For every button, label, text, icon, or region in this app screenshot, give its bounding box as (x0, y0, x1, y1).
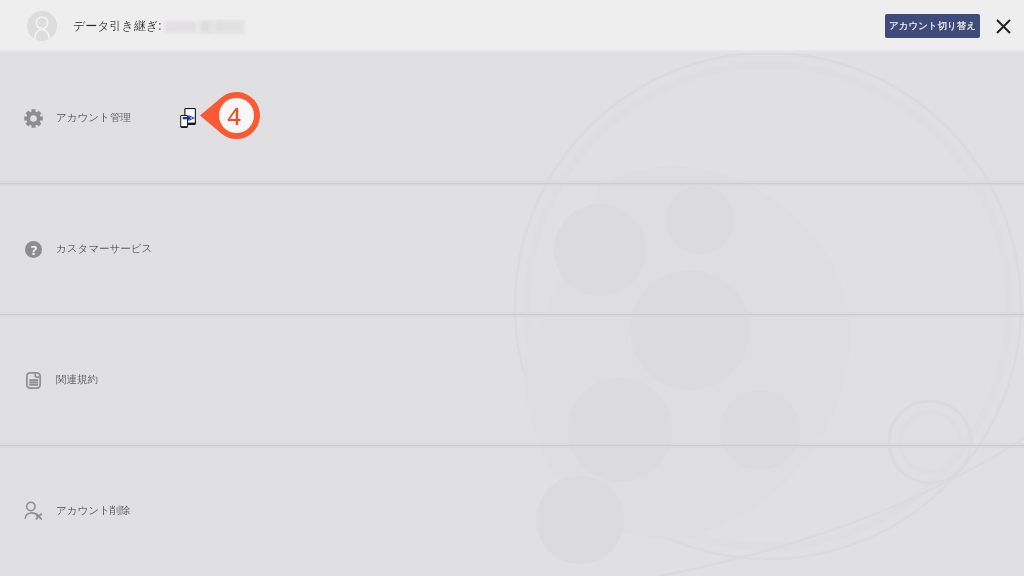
staticText: 4 (227, 99, 241, 132)
button[interactable]: アカウント削除 (0, 446, 1024, 576)
staticText: アカウント管理 (56, 111, 131, 124)
button[interactable]: ? (0, 184, 1024, 314)
staticText: ? (31, 241, 37, 258)
button[interactable]: アカウント切り替え (885, 14, 980, 38)
staticText: アカウント切り替え (889, 20, 977, 32)
button[interactable]: アカウント管理 (0, 53, 1024, 183)
staticText: カスタマーサービス (56, 242, 153, 255)
staticText: 関連規約 (56, 373, 98, 386)
other: Transfer data (180, 108, 196, 128)
button[interactable]: Close (989, 12, 1017, 40)
staticText: データ引き継ぎ: (73, 17, 162, 33)
button[interactable]: 関連規約 (0, 315, 1024, 445)
staticText: アカウント削除 (56, 504, 131, 517)
